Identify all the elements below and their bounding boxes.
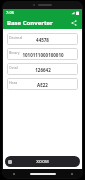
staticText: XOOM bbox=[36, 159, 49, 164]
button[interactable]: Hexa bbox=[7, 78, 78, 90]
button[interactable]: Recents bbox=[69, 171, 74, 176]
button[interactable]: Binary bbox=[7, 48, 78, 60]
staticText: 1010111000100010 bbox=[22, 52, 64, 58]
staticText: Binary bbox=[9, 50, 20, 55]
button[interactable]: Home bbox=[30, 173, 56, 175]
button[interactable]: Share bbox=[69, 18, 79, 28]
button[interactable]: Octal bbox=[7, 63, 78, 75]
staticText: Decimal bbox=[9, 35, 23, 40]
staticText: Hexa bbox=[9, 80, 18, 85]
staticText: 7:06 bbox=[6, 10, 14, 15]
button[interactable]: Decimal bbox=[7, 33, 78, 45]
staticText: Base Converter bbox=[7, 19, 53, 27]
staticText: Octal bbox=[9, 65, 18, 70]
button[interactable]: XOOM bbox=[5, 156, 80, 167]
button[interactable]: Back bbox=[11, 171, 16, 176]
staticText: AE22 bbox=[37, 82, 48, 88]
staticText: 44578 bbox=[36, 37, 49, 43]
staticText: 126642 bbox=[35, 67, 51, 73]
